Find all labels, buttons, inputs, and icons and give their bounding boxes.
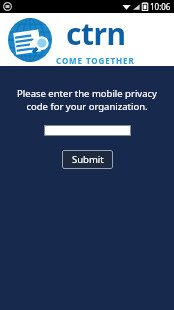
button[interactable]: Mobile privacy code input bbox=[44, 125, 131, 136]
staticText: Please enter the mobile privacy code for… bbox=[10, 87, 164, 113]
staticText: Submit bbox=[72, 153, 104, 166]
staticText: 10:06 bbox=[150, 1, 171, 12]
staticText: COME TOGETHER bbox=[56, 55, 135, 66]
button[interactable]: Submit bbox=[62, 150, 113, 169]
staticText: ctrn bbox=[66, 13, 126, 54]
